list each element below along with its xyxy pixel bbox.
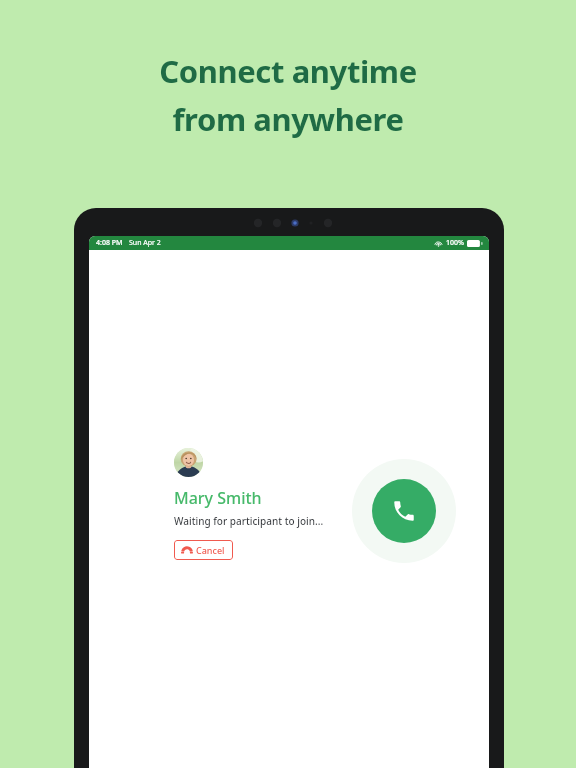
staticText: 4:08 PM [96, 238, 123, 248]
staticText: Sun Apr 2 [129, 238, 161, 248]
button[interactable]: Call [352, 459, 456, 563]
staticText: Mary Smith [174, 487, 262, 509]
staticText: 100% [446, 238, 464, 248]
staticText: Connect anytime [159, 50, 417, 92]
staticText: Cancel [196, 544, 225, 556]
button[interactable]: Cancel [174, 540, 233, 560]
staticText: Waiting for participant to join... [174, 514, 324, 528]
staticText: from anywhere [172, 98, 404, 140]
